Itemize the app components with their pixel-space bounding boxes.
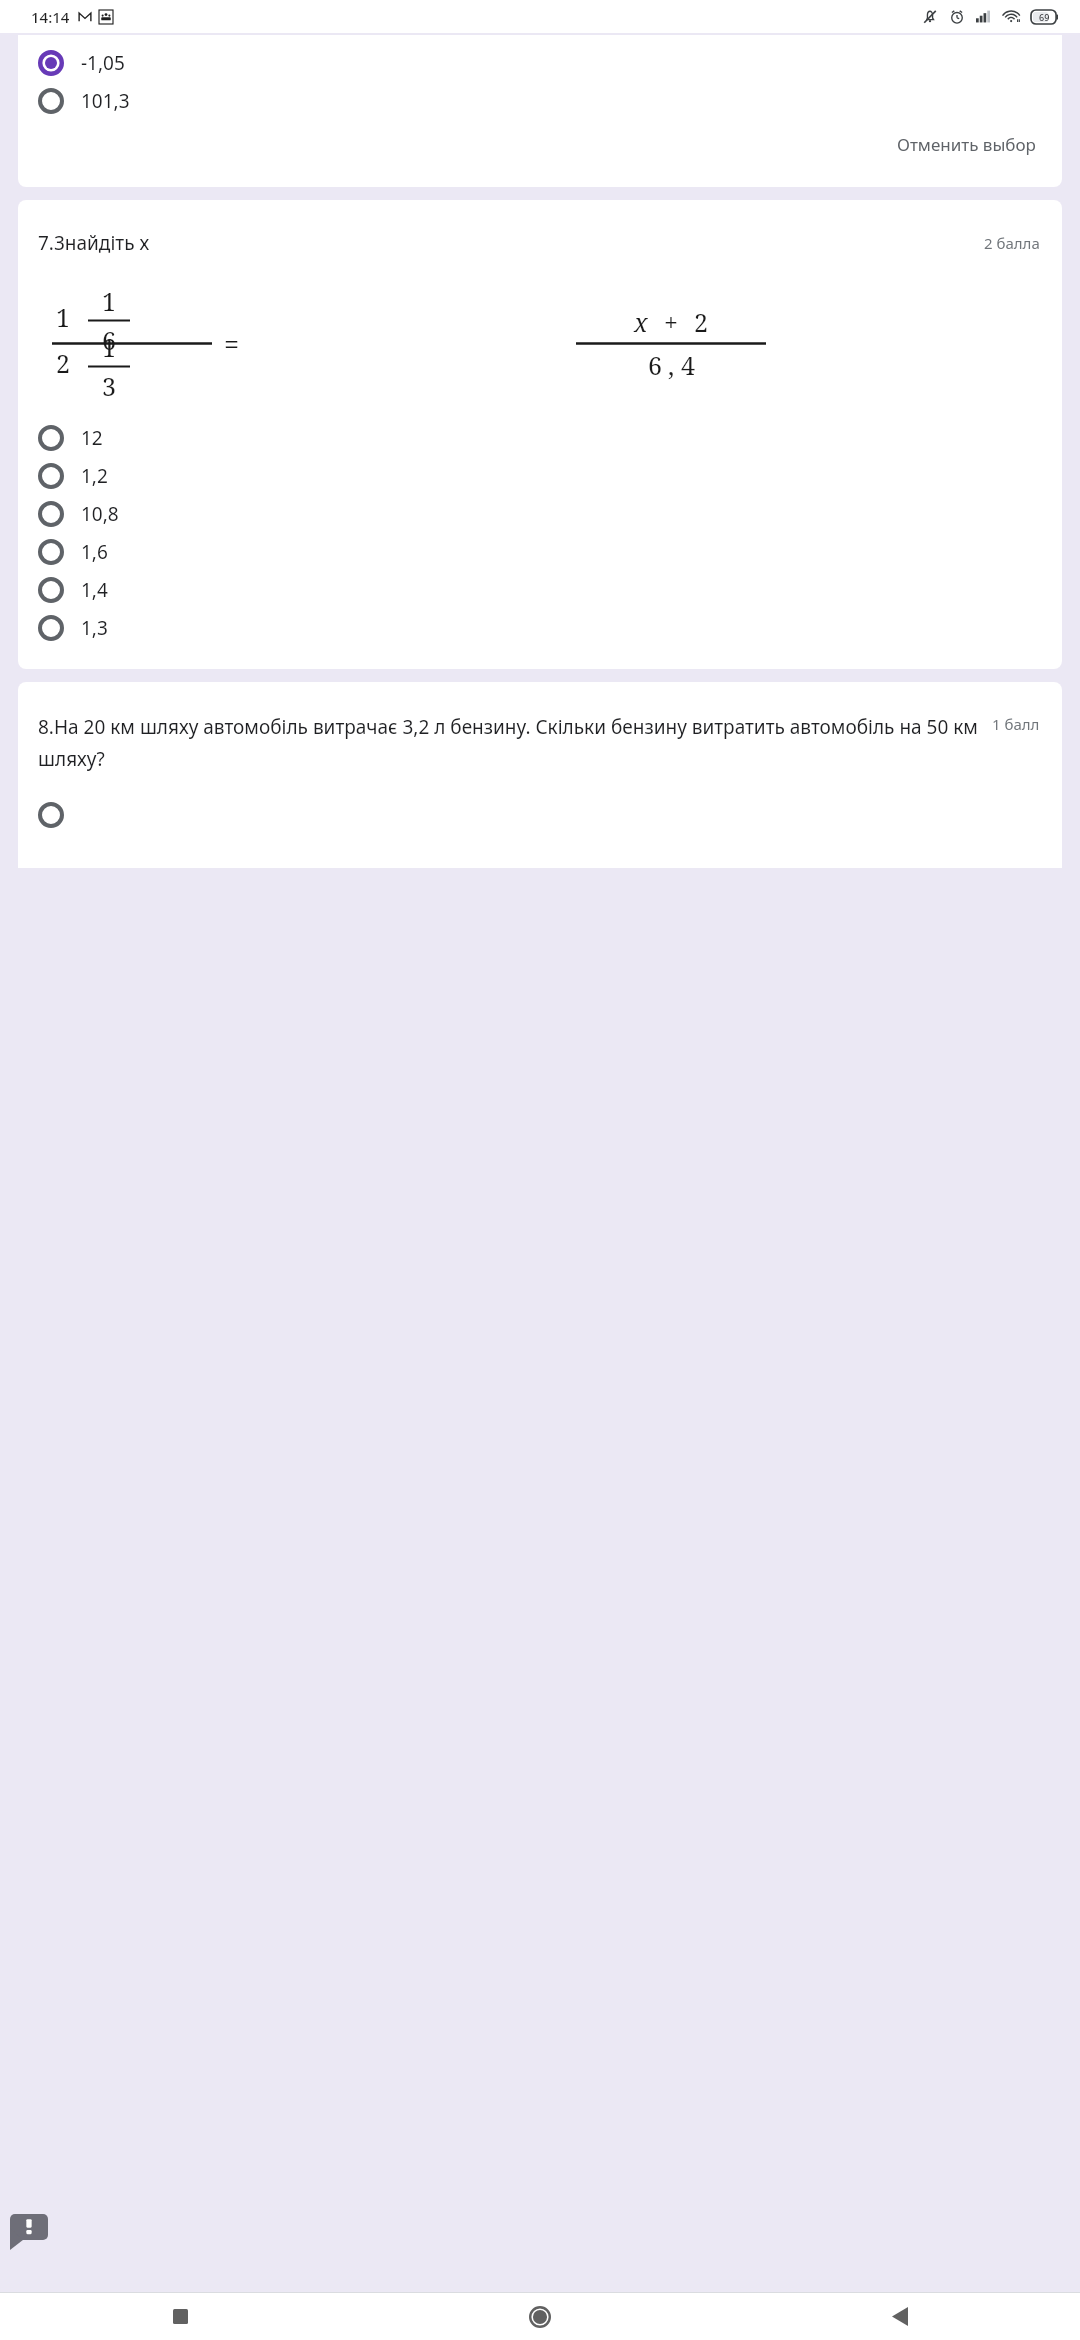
staticText: 12 bbox=[81, 425, 103, 451]
button[interactable]: Feedback bbox=[10, 2214, 48, 2250]
button[interactable]: 1,2 bbox=[18, 457, 1062, 495]
staticText: 1 bbox=[102, 284, 116, 318]
staticText: 10,8 bbox=[81, 501, 119, 527]
staticText: 14:14 bbox=[31, 7, 70, 27]
staticText: Отменить выбор bbox=[897, 133, 1036, 156]
button[interactable] bbox=[18, 802, 1062, 828]
button[interactable]: 1,6 bbox=[18, 533, 1062, 571]
staticText: 4 bbox=[681, 348, 695, 382]
staticText: 1,2 bbox=[81, 463, 108, 489]
staticText: x bbox=[634, 305, 648, 339]
staticText: 101,3 bbox=[81, 88, 130, 114]
staticText: 8.На 20 км шляху автомобіль витрачає 3,2… bbox=[38, 714, 980, 772]
staticText: -1,05 bbox=[81, 50, 125, 76]
staticText: 1 bbox=[56, 300, 70, 334]
staticText: 1,6 bbox=[81, 539, 108, 565]
button[interactable]: 1,4 bbox=[18, 571, 1062, 609]
staticText: = bbox=[224, 325, 240, 362]
staticText: 1,4 bbox=[81, 577, 108, 603]
button[interactable]: 10,8 bbox=[18, 495, 1062, 533]
button[interactable]: -1,05 bbox=[18, 44, 1062, 82]
button[interactable]: Отменить выбор bbox=[18, 129, 1062, 160]
staticText: 3 bbox=[102, 369, 116, 403]
button[interactable]: Back bbox=[720, 2293, 1080, 2340]
staticText: 1 bbox=[102, 330, 116, 364]
staticText: 1 балл bbox=[992, 714, 1040, 734]
button[interactable]: Home bbox=[360, 2293, 720, 2340]
staticText: , bbox=[668, 348, 675, 382]
staticText: + bbox=[664, 305, 678, 339]
staticText: 6 bbox=[102, 323, 116, 357]
button[interactable]: 101,3 bbox=[18, 82, 1062, 120]
staticText: 7.3найдіть х bbox=[38, 230, 984, 256]
staticText: 6 bbox=[648, 348, 662, 382]
staticText: 2 балла bbox=[984, 233, 1040, 253]
staticText: 1,3 bbox=[81, 615, 108, 641]
staticText: 2 bbox=[694, 305, 708, 339]
button[interactable]: 1,3 bbox=[18, 609, 1062, 647]
button[interactable]: Recent apps bbox=[0, 2293, 360, 2340]
staticText: 2 bbox=[56, 346, 70, 380]
staticText: 69 bbox=[1039, 11, 1050, 23]
button[interactable]: 12 bbox=[18, 419, 1062, 457]
